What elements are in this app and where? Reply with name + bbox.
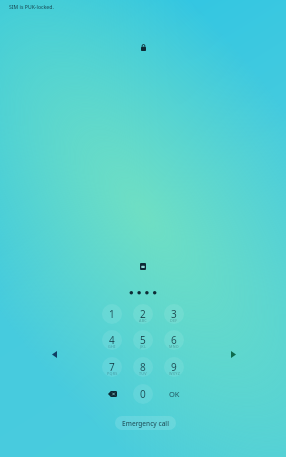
staticText: ABC (139, 318, 147, 323)
staticText: 6 (171, 333, 177, 347)
staticText: DEF (170, 318, 178, 323)
staticText: WXYZ (169, 371, 180, 376)
staticText: 4 (109, 333, 115, 347)
button[interactable]: 8 (133, 357, 153, 377)
staticText: MNO (169, 344, 179, 349)
staticText: GHI (108, 344, 116, 349)
button[interactable]: 1 (102, 304, 122, 324)
button[interactable]: 5 (133, 330, 153, 350)
staticText: 0 (140, 387, 146, 401)
staticText: TUV (139, 371, 147, 376)
button[interactable]: 6 (164, 330, 184, 350)
staticText: SIM is PUK-locked. (9, 4, 54, 11)
staticText: PQRS (107, 371, 118, 376)
button[interactable]: 3 (164, 304, 184, 324)
staticText: 1 (109, 307, 115, 321)
button[interactable]: 4 (102, 330, 122, 350)
button[interactable]: 0 (133, 384, 153, 404)
button[interactable]: Emergency call (115, 416, 176, 430)
staticText: 5 (140, 333, 146, 347)
staticText: 2 (140, 307, 146, 321)
staticText: 9 (171, 360, 177, 374)
button[interactable]: Next (225, 346, 241, 362)
button[interactable]: 7 (102, 357, 122, 377)
staticText: 7 (109, 360, 115, 374)
button[interactable]: OK (164, 384, 184, 404)
staticText: OK (169, 389, 180, 399)
button[interactable]: Previous (46, 346, 62, 362)
staticText: 3 (171, 307, 177, 321)
button[interactable]: 2 (133, 304, 153, 324)
staticText: 8 (140, 360, 146, 374)
button[interactable]: Delete (102, 384, 122, 404)
button[interactable]: 9 (164, 357, 184, 377)
staticText: Emergency call (122, 419, 169, 428)
staticText: JKL (140, 344, 147, 349)
